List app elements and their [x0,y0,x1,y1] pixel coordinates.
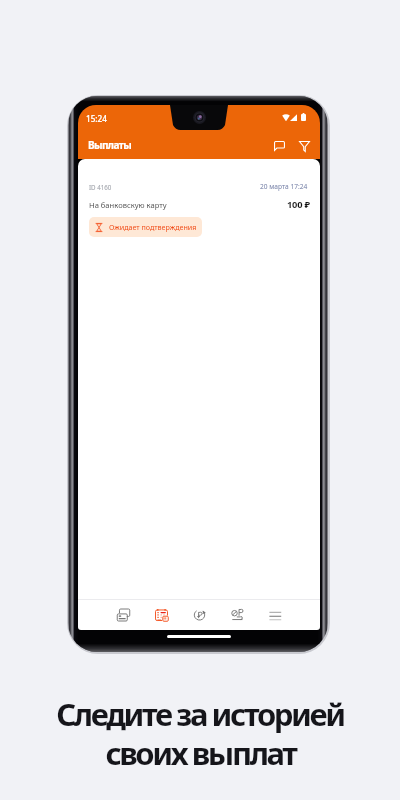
staticText: 20 марта 17:24 [260,182,308,191]
staticText: Следите за историей [56,693,344,735]
button[interactable]: Exchange [180,600,218,630]
staticText: На банковскую карту [89,200,167,210]
staticText: 15:24 [86,113,107,124]
button[interactable]: Filter [293,135,315,157]
staticText: Ожидает подтверждения [109,222,197,232]
button[interactable]: ID 4160 [78,159,320,179]
button[interactable]: Transfers [218,600,256,630]
button[interactable]: Menu [256,600,294,630]
button[interactable]: Payments [142,600,180,630]
staticText: Выплаты [88,138,132,152]
button[interactable]: Chat [268,135,290,157]
staticText: ID 4160 [89,183,112,191]
button[interactable]: Cards [104,600,142,630]
staticText: своих выплат [105,732,296,774]
staticText: 100 ₽ [287,198,310,211]
